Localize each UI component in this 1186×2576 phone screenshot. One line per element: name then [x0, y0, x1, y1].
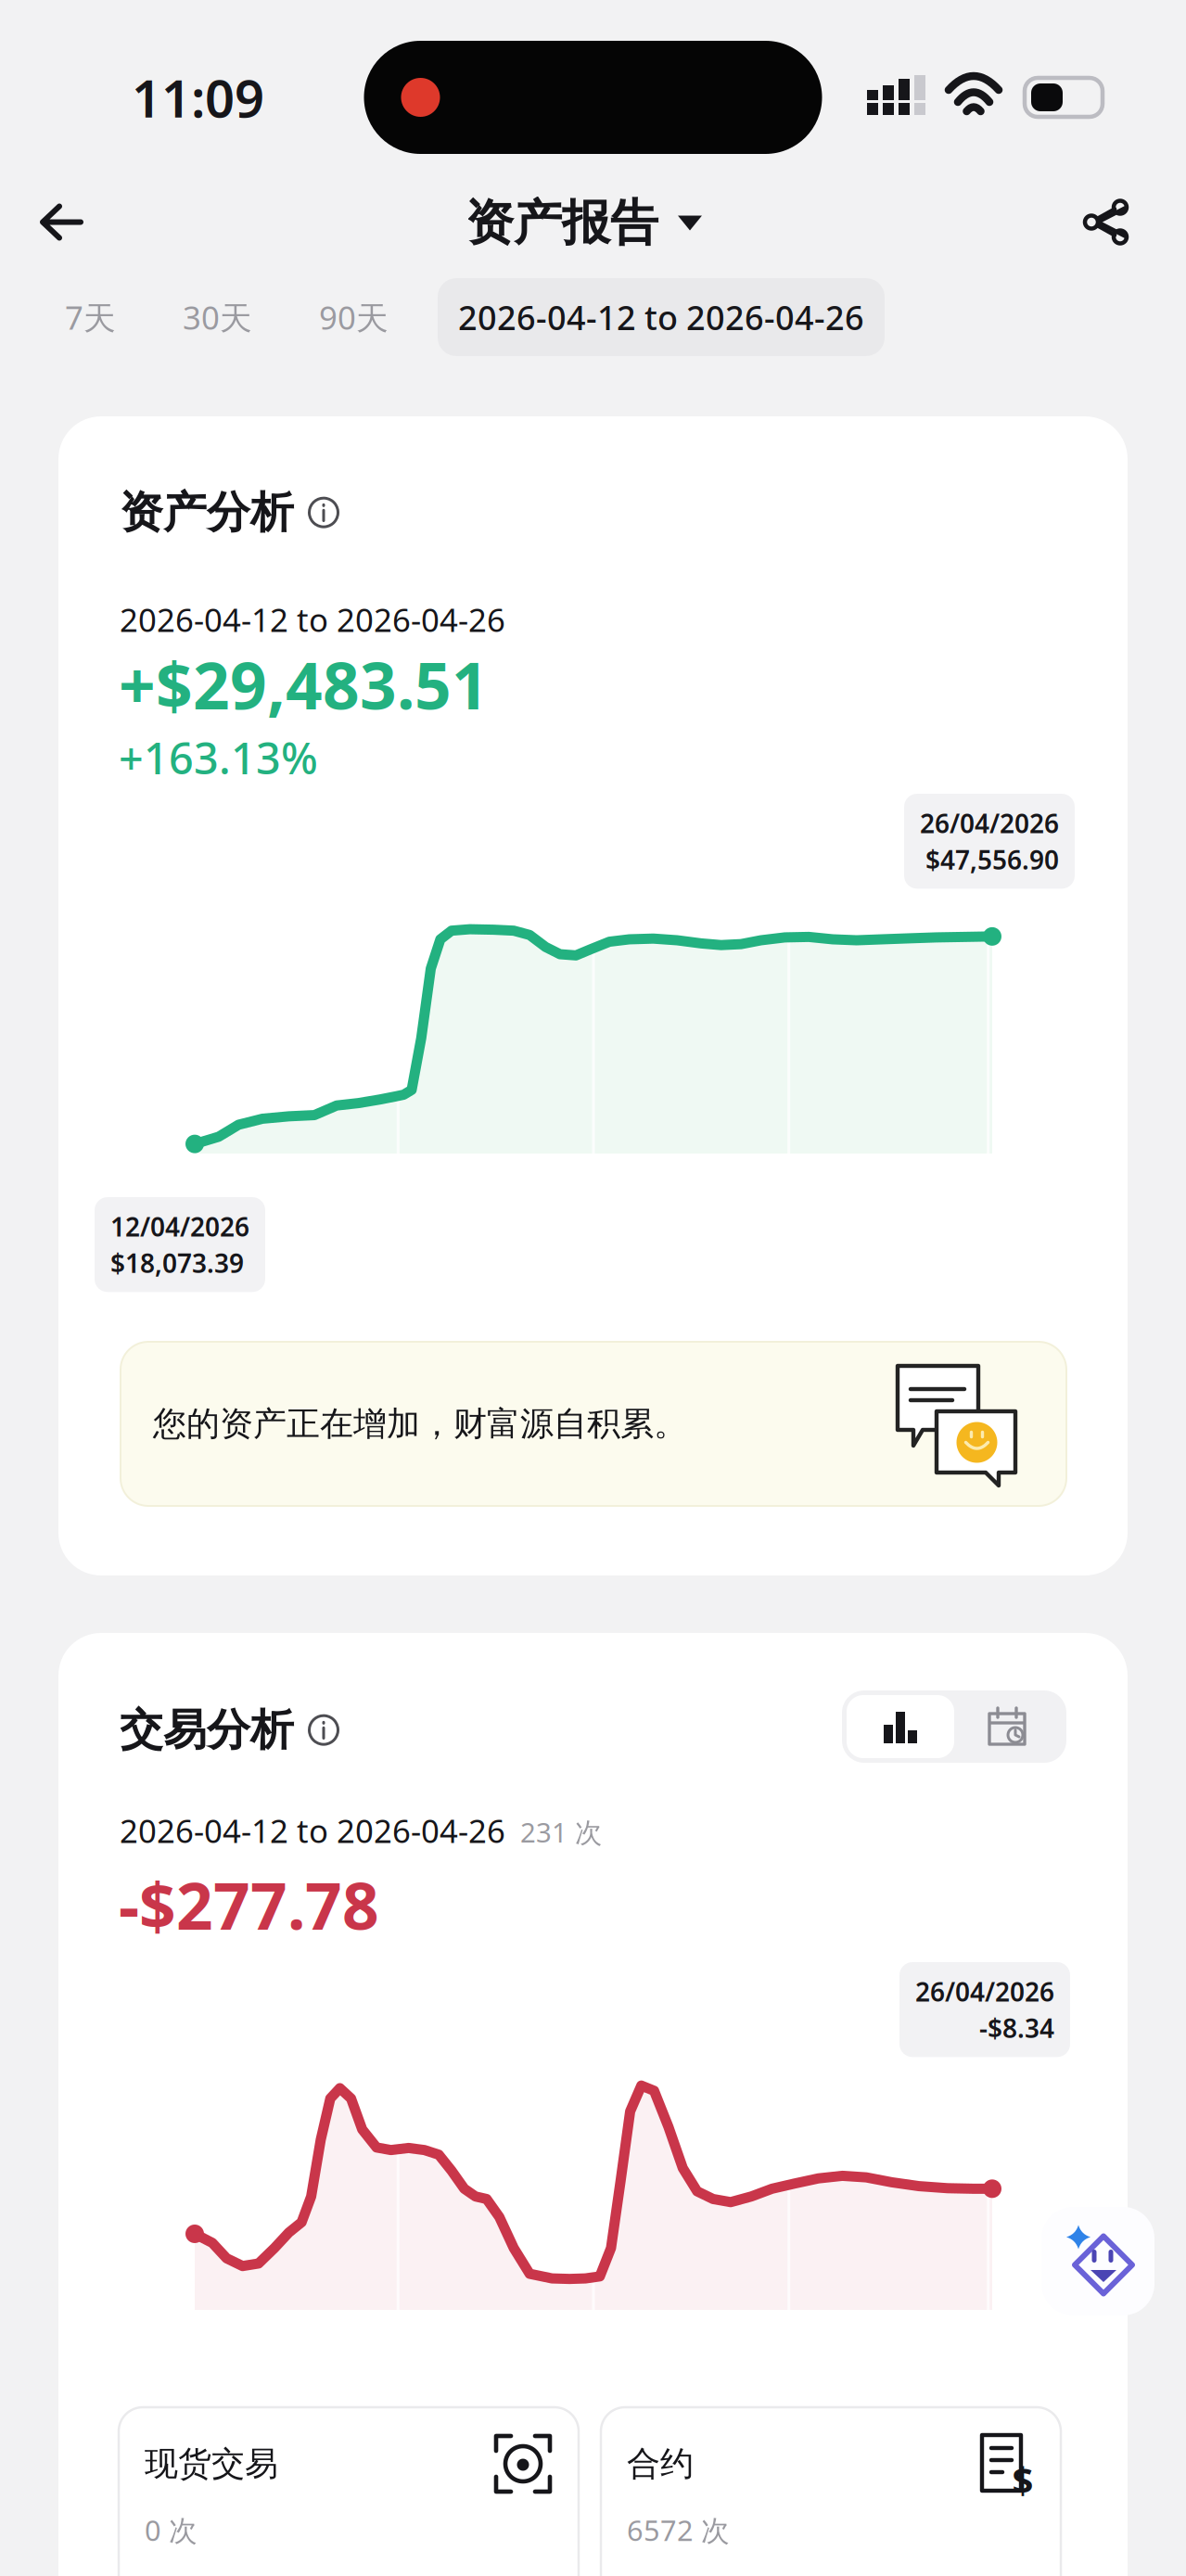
staticText: -$277.78 [119, 1862, 379, 1947]
staticText: 合约 [627, 2443, 694, 2484]
staticText: 资产报告 [465, 193, 658, 253]
button[interactable]: 90天 [286, 279, 422, 355]
button[interactable]: Share [1065, 182, 1147, 264]
staticText: 您的资产正在增加，财富源自积累。 [153, 1403, 687, 1444]
staticText: +$29,483.51 [119, 642, 489, 727]
staticText: 30天 [183, 296, 252, 338]
staticText: $ [1012, 2455, 1033, 2504]
staticText: 0 次 [145, 2511, 198, 2549]
staticText: 26/04/2026 [915, 1974, 1054, 2009]
button[interactable]: Bar chart view [847, 1695, 954, 1758]
staticText: 2026-04-12 to 2026-04-26 [120, 598, 505, 641]
button[interactable]: 资产报告 [449, 182, 720, 264]
staticText: 2026-04-12 to 2026-04-26 [458, 295, 864, 339]
staticText: 6572 次 [627, 2511, 730, 2549]
button[interactable]: 7天 [32, 279, 149, 355]
staticText: -$8.34 [979, 2011, 1054, 2045]
staticText: 26/04/2026 [920, 806, 1059, 840]
button[interactable]: Calendar view [954, 1695, 1062, 1758]
staticText: 231 次 [520, 1814, 602, 1850]
button[interactable]: Back [20, 184, 104, 262]
staticText: 12/04/2026 [110, 1209, 249, 1244]
button[interactable]: 2026-04-12 to 2026-04-26 [438, 278, 885, 356]
staticText: 交易分析 [120, 1703, 294, 1757]
staticText: 7天 [65, 296, 116, 338]
staticText: 90天 [319, 296, 389, 338]
staticText: 现货交易 [145, 2443, 278, 2484]
staticText: +163.13% [119, 729, 318, 786]
staticText: 资产分析 [120, 486, 294, 539]
button[interactable]: 30天 [149, 279, 286, 355]
staticText: 2026-04-12 to 2026-04-26 [120, 1809, 505, 1852]
staticText: $47,556.90 [925, 842, 1059, 877]
button[interactable]: AI assistant [1041, 2207, 1154, 2315]
staticText: 11:09 [132, 63, 264, 132]
staticText: $18,073.39 [110, 1246, 244, 1280]
